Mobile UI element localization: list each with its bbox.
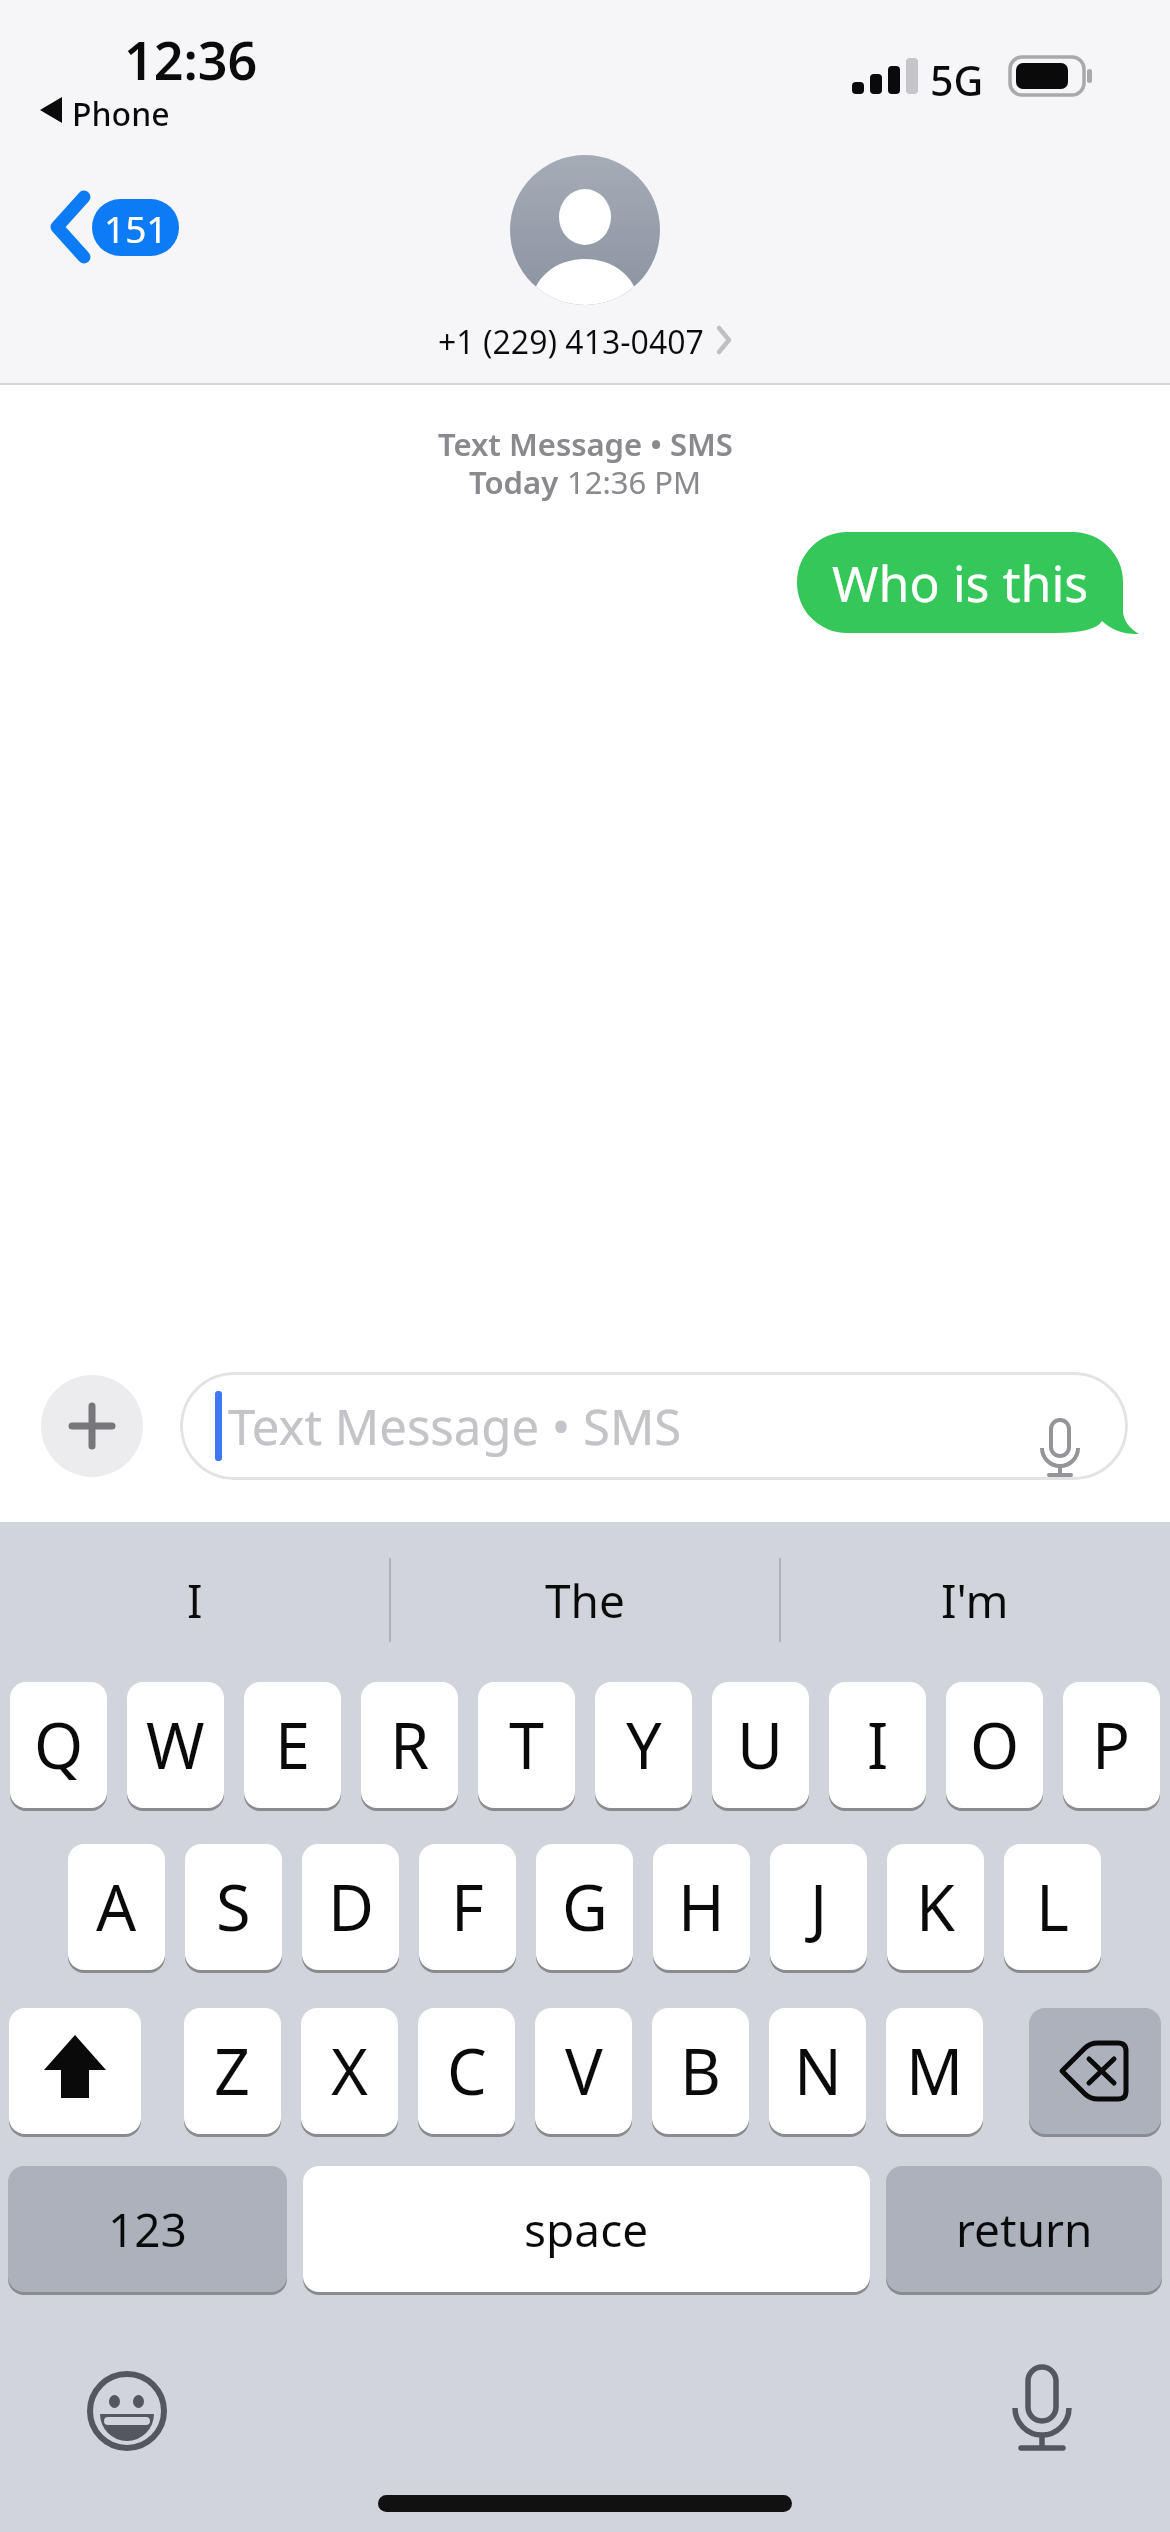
staticText: 12:36	[124, 24, 258, 82]
staticText: +1 (229) 413-0407	[438, 320, 704, 360]
staticText: space	[524, 2198, 649, 2261]
button[interactable]: A	[68, 1844, 165, 1970]
staticText: P	[1092, 1702, 1131, 1788]
button[interactable]: space	[303, 2166, 870, 2292]
staticText: D	[328, 1864, 374, 1950]
button[interactable]: Phone	[40, 92, 170, 128]
button[interactable]: return	[886, 2166, 1162, 2292]
staticText: F	[451, 1864, 484, 1950]
staticText: R	[390, 1702, 430, 1788]
button[interactable]	[1029, 2008, 1161, 2134]
button[interactable]	[41, 1375, 143, 1477]
button[interactable]: E	[244, 1682, 341, 1808]
button[interactable]: T	[478, 1682, 575, 1808]
staticText: N	[794, 2028, 842, 2114]
staticText: C	[447, 2028, 487, 2114]
button[interactable]: I'm	[780, 1528, 1170, 1672]
button[interactable]: W	[127, 1682, 224, 1808]
button[interactable]: K	[887, 1844, 984, 1970]
staticText: 5G	[930, 52, 984, 96]
button[interactable]: O	[946, 1682, 1043, 1808]
staticText: E	[275, 1702, 311, 1788]
staticText: I	[187, 1569, 203, 1632]
staticText: B	[680, 2028, 721, 2114]
button[interactable]: F	[419, 1844, 516, 1970]
staticText: 12:36 PM	[559, 461, 702, 503]
button[interactable]: Y	[595, 1682, 692, 1808]
staticText: S	[216, 1864, 251, 1950]
button[interactable]: J	[770, 1844, 867, 1970]
staticText: Z	[214, 2028, 251, 2114]
staticText: return	[956, 2198, 1093, 2261]
staticText: K	[916, 1864, 955, 1950]
button[interactable]: U	[712, 1682, 809, 1808]
staticText: W	[146, 1702, 205, 1788]
button[interactable]: +1 (229) 413-0407	[438, 320, 732, 360]
staticText: J	[810, 1864, 828, 1950]
staticText: V	[565, 2028, 603, 2114]
button[interactable]: The	[390, 1528, 780, 1672]
button[interactable]: N	[769, 2008, 866, 2134]
button[interactable]: Text Message • SMS	[180, 1372, 1128, 1480]
staticText: I'm	[941, 1569, 1009, 1632]
button[interactable]: 151	[48, 192, 179, 262]
staticText: I	[867, 1702, 889, 1788]
button[interactable]: P	[1063, 1682, 1160, 1808]
staticText: H	[678, 1864, 725, 1950]
staticText: X	[331, 2028, 368, 2114]
staticText: M	[906, 2028, 964, 2114]
button[interactable]: I	[829, 1682, 926, 1808]
button[interactable]: D	[302, 1844, 399, 1970]
staticText: L	[1036, 1864, 1070, 1950]
button[interactable]: Z	[184, 2008, 281, 2134]
button[interactable]: V	[535, 2008, 632, 2134]
button[interactable]: B	[652, 2008, 749, 2134]
button[interactable]: R	[361, 1682, 458, 1808]
button[interactable]	[87, 2371, 167, 2451]
button[interactable]: Q	[10, 1682, 107, 1808]
staticText: T	[509, 1702, 545, 1788]
staticText: Who is this	[832, 549, 1089, 617]
button[interactable]: M	[886, 2008, 983, 2134]
staticText: Today	[469, 461, 559, 503]
staticText: Text Message • SMS	[228, 1393, 682, 1460]
staticText: The	[545, 1569, 625, 1632]
button[interactable]: 123	[8, 2166, 287, 2292]
staticText: 151	[104, 203, 168, 253]
button[interactable]	[9, 2008, 141, 2134]
button[interactable]: C	[418, 2008, 515, 2134]
staticText: Y	[626, 1702, 662, 1788]
button[interactable]	[1013, 2363, 1073, 2453]
staticText: Phone	[72, 92, 170, 128]
staticText: G	[562, 1864, 608, 1950]
button[interactable]: G	[536, 1844, 633, 1970]
staticText: U	[737, 1702, 784, 1788]
button[interactable]: L	[1004, 1844, 1101, 1970]
button[interactable]: I	[0, 1528, 390, 1672]
button[interactable]: H	[653, 1844, 750, 1970]
button[interactable]: X	[301, 2008, 398, 2134]
staticText: Q	[34, 1702, 84, 1788]
staticText: Text Message • SMS	[438, 423, 733, 465]
button[interactable]: S	[185, 1844, 282, 1970]
staticText: A	[96, 1864, 137, 1950]
staticText: 123	[108, 2198, 187, 2261]
staticText: O	[970, 1702, 1020, 1788]
